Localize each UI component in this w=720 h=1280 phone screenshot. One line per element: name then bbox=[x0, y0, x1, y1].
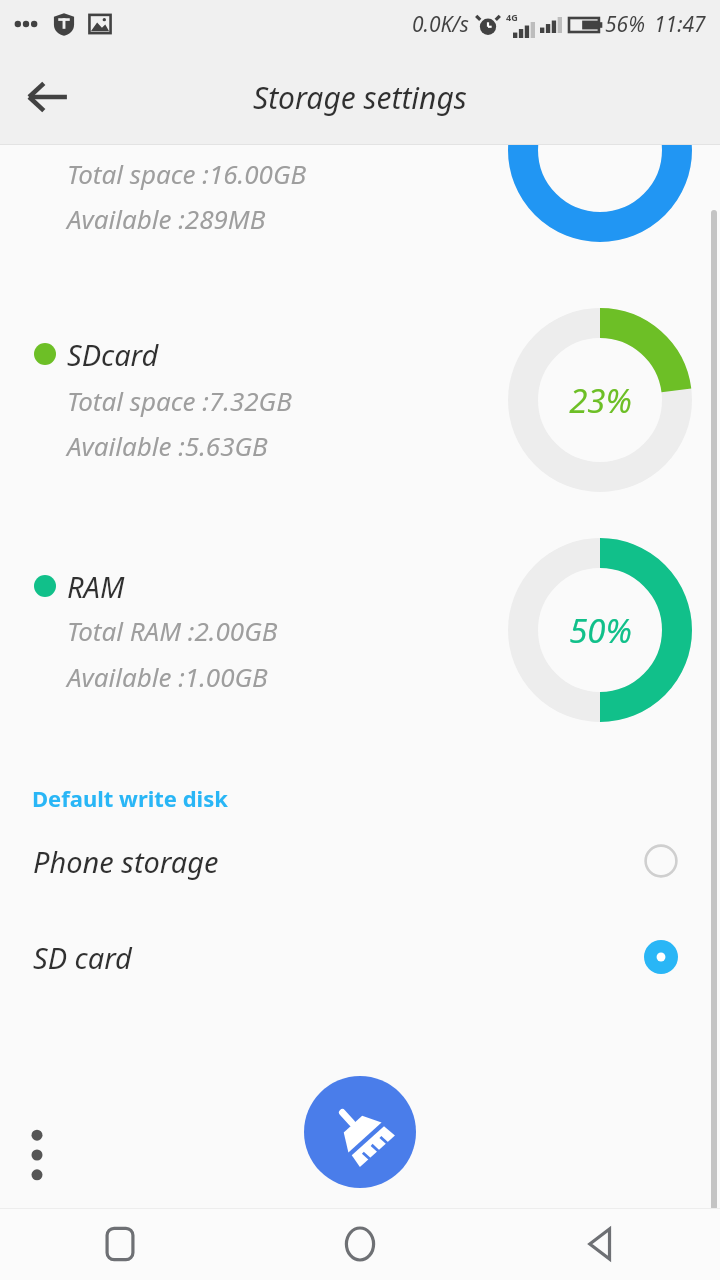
button[interactable]: Recents bbox=[0, 1208, 240, 1280]
staticText: Phone storage bbox=[33, 842, 219, 881]
staticText: 11:47 bbox=[654, 10, 706, 39]
staticText: Total space :16.00GB bbox=[67, 156, 307, 191]
staticText: Available :5.63GB bbox=[67, 428, 268, 463]
button[interactable]: Back bbox=[480, 1208, 720, 1280]
staticText: 50% bbox=[569, 608, 632, 653]
button[interactable]: SD card bbox=[0, 918, 720, 996]
staticText: RAM bbox=[67, 567, 125, 606]
staticText: 0.0K/s bbox=[412, 10, 469, 39]
staticText: 56% bbox=[605, 10, 645, 39]
staticText: SD card bbox=[33, 938, 132, 977]
staticText: 4G bbox=[506, 11, 518, 23]
staticText: Available :1.00GB bbox=[67, 659, 268, 694]
button[interactable]: More options bbox=[16, 1115, 58, 1195]
staticText: Storage settings bbox=[253, 77, 467, 118]
staticText: Default write disk bbox=[32, 783, 228, 813]
button[interactable]: Phone storage bbox=[0, 822, 720, 900]
staticText: SDcard bbox=[67, 335, 159, 374]
staticText: Total space :7.32GB bbox=[67, 383, 292, 418]
staticText: 23% bbox=[569, 378, 632, 423]
staticText: Total RAM :2.00GB bbox=[67, 613, 278, 648]
button[interactable]: Back bbox=[14, 63, 82, 131]
button[interactable]: Clean bbox=[304, 1076, 416, 1188]
staticText: Available :289MB bbox=[67, 201, 266, 236]
button[interactable]: Home bbox=[240, 1208, 480, 1280]
